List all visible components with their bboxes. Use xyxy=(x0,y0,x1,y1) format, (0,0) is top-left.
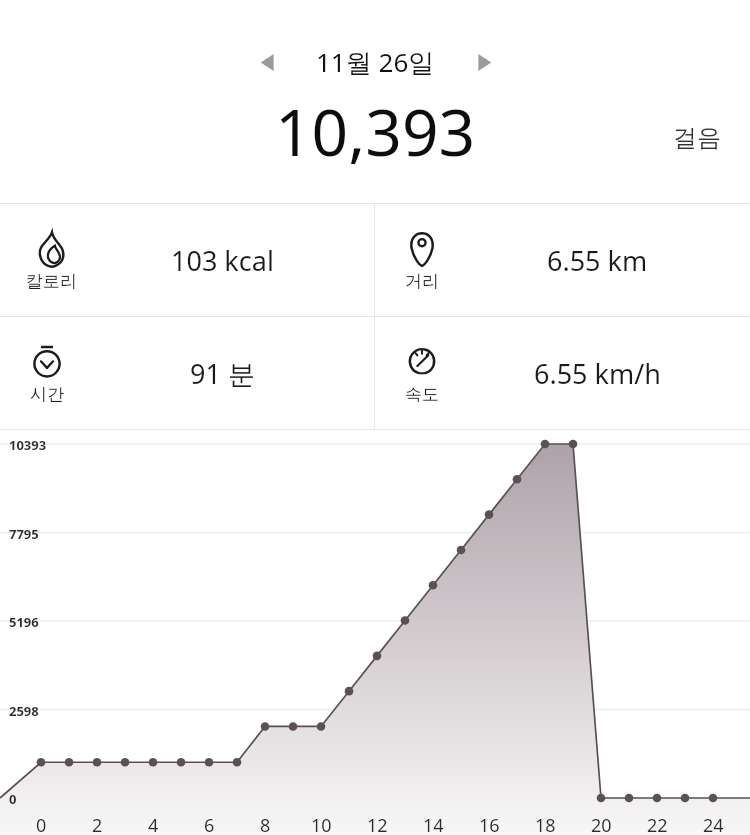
button[interactable]: Speed xyxy=(375,317,750,429)
staticText: 칼로리 xyxy=(26,271,77,292)
staticText: 0 xyxy=(9,790,17,808)
staticText: 8 xyxy=(260,813,271,835)
staticText: 0 xyxy=(36,813,47,835)
staticText: 18 xyxy=(535,813,556,835)
staticText: 6 xyxy=(204,813,215,835)
button[interactable]: Time xyxy=(0,317,374,429)
staticText: 11월 26일 xyxy=(316,44,435,80)
staticText: 91 분 xyxy=(190,355,255,392)
staticText: 10 xyxy=(311,813,332,835)
staticText: 거리 xyxy=(405,271,439,292)
button[interactable]: Distance xyxy=(375,204,750,316)
staticText: 7795 xyxy=(9,525,39,543)
button[interactable]: Calories xyxy=(0,204,374,316)
staticText: 2598 xyxy=(9,702,39,720)
staticText: 속도 xyxy=(405,384,439,405)
staticText: 16 xyxy=(479,813,500,835)
staticText: 6.55 km xyxy=(547,242,648,279)
staticText: 6.55 km/h xyxy=(534,355,661,392)
staticText: 103 kcal xyxy=(171,242,274,279)
staticText: 4 xyxy=(148,813,159,835)
staticText: 10393 xyxy=(9,436,47,454)
staticText: 20 xyxy=(591,813,612,835)
staticText: 2 xyxy=(92,813,103,835)
staticText: 10,393 xyxy=(275,88,476,175)
staticText: 22 xyxy=(647,813,668,835)
staticText: 24 xyxy=(703,813,724,835)
staticText: 걸음 xyxy=(673,123,721,153)
button[interactable]: Next day xyxy=(461,39,507,85)
staticText: 14 xyxy=(423,813,444,835)
staticText: 시간 xyxy=(30,384,64,405)
staticText: 5196 xyxy=(9,613,39,631)
staticText: 12 xyxy=(367,813,388,835)
button[interactable]: Previous day xyxy=(244,39,290,85)
